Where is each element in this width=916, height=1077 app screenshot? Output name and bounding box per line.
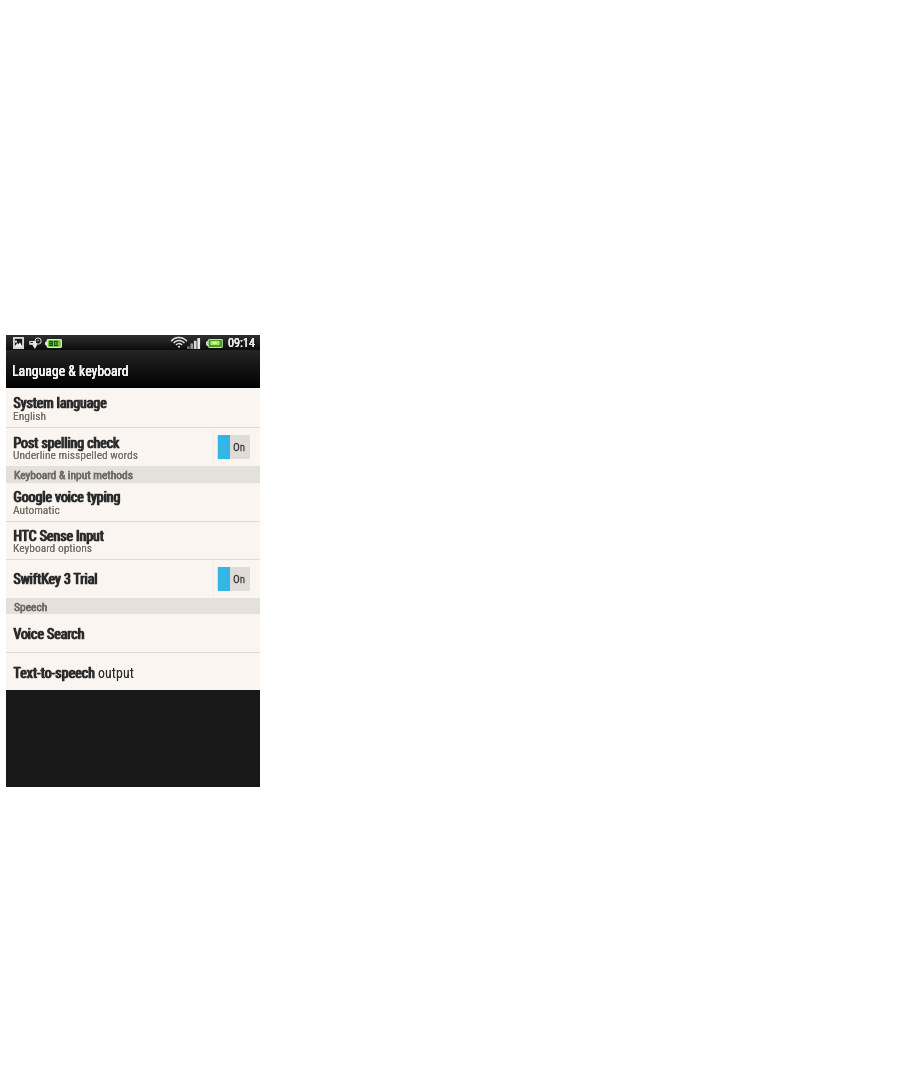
button[interactable]: Voice Search — [6, 614, 260, 652]
staticText: Keyboard & input methods — [14, 468, 134, 481]
staticText: HTC Sense Input — [13, 528, 104, 544]
button[interactable]: System language — [6, 388, 260, 427]
staticText: On — [233, 573, 246, 586]
staticText: Automatic — [13, 503, 60, 516]
staticText: Keyboard & input methods — [14, 468, 134, 481]
staticText: Google voice typing — [14, 489, 121, 505]
button[interactable]: Language & keyboard — [6, 350, 260, 388]
staticText: HTC Sense Input — [14, 528, 105, 544]
staticText: Post spelling check — [14, 435, 120, 451]
staticText: SwiftKey 3 Trial — [14, 571, 98, 587]
staticText: Underline misspelled words — [13, 448, 138, 461]
staticText: 09:14 — [228, 336, 255, 350]
staticText: English — [13, 409, 47, 422]
staticText: Text-to-speech — [14, 665, 99, 681]
button[interactable]: Toggle setting — [217, 567, 250, 591]
staticText: System language — [14, 395, 108, 411]
staticText: Underline misspelled words — [13, 448, 138, 461]
staticText: English — [13, 409, 47, 422]
staticText: Voice Search — [13, 626, 84, 642]
staticText: Voice Search — [14, 626, 85, 642]
staticText: System language — [13, 395, 107, 411]
staticText: SwiftKey 3 Trial — [13, 571, 97, 587]
staticText: Speech — [14, 600, 48, 613]
button[interactable]: Post spelling check — [6, 428, 260, 466]
button[interactable]: Toggle setting — [217, 435, 250, 459]
staticText: Speech — [14, 600, 48, 613]
staticText: Keyboard options — [13, 541, 93, 554]
staticText: On — [233, 441, 246, 454]
staticText: Keyboard options — [13, 541, 93, 554]
staticText: 09:14 — [228, 336, 255, 350]
staticText: Text-to-speech — [13, 665, 98, 681]
staticText: Google voice typing — [13, 489, 120, 505]
button[interactable]: Google voice typing — [6, 483, 260, 521]
button[interactable]: HTC Sense Input — [6, 522, 260, 559]
staticText: Language & keyboard — [12, 363, 129, 379]
button[interactable]: SwiftKey 3 Trial — [6, 560, 260, 598]
staticText: output — [98, 665, 134, 681]
button[interactable]: Text-to-speech — [6, 653, 260, 690]
staticText: Automatic — [13, 503, 60, 516]
staticText: Post spelling check — [13, 435, 119, 451]
staticText: output — [98, 665, 134, 681]
staticText: Language & keyboard — [12, 363, 129, 379]
